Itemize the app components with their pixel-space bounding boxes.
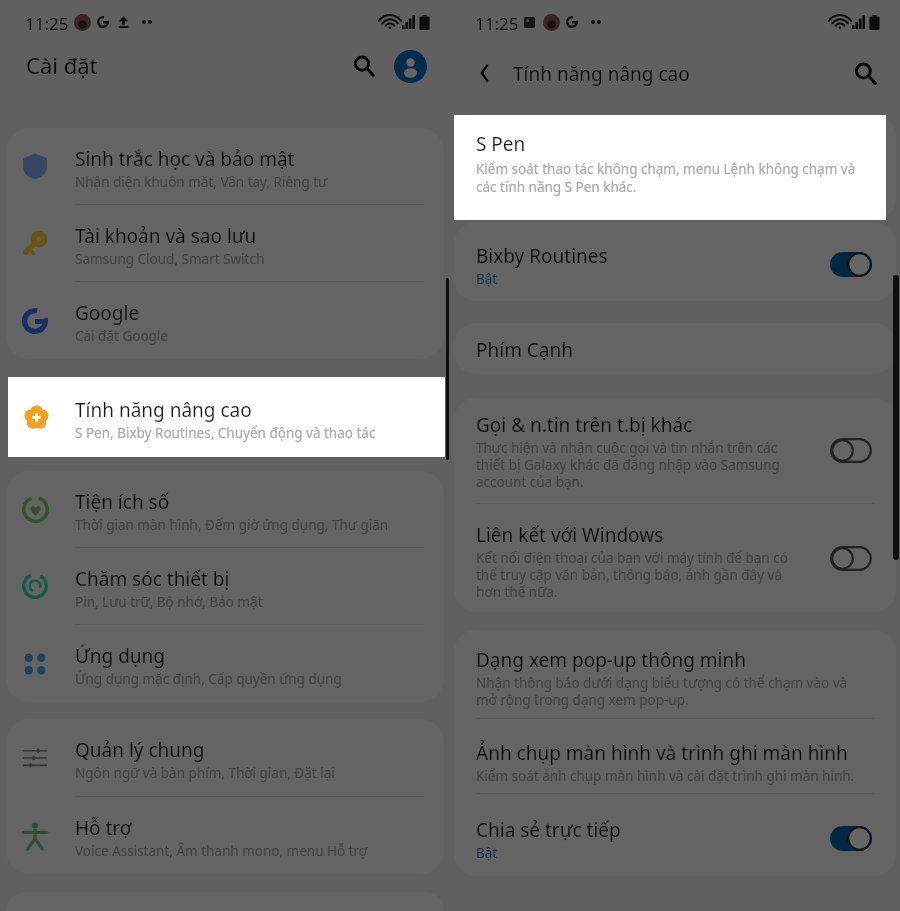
- staticText: Pin, Lưu trữ, Bộ nhớ, Bảo mật: [75, 593, 263, 611]
- staticText: Phím Cạnh: [476, 337, 573, 363]
- staticText: Sinh trắc học và bảo mật: [75, 146, 295, 172]
- staticText: Chăm sóc thiết bị: [75, 566, 230, 592]
- staticText: Ứng dụng: [75, 643, 166, 669]
- staticText: Dạng xem pop-up thông minh: [476, 647, 746, 673]
- button[interactable]: Sinh trắc học và bảo mật: [6, 128, 444, 204]
- staticText: Kết nối điện thoại của bạn với máy tính …: [476, 549, 806, 601]
- staticText: Bật: [476, 844, 498, 862]
- staticText: Bixby Routines: [476, 243, 608, 269]
- staticText: Tài khoản và sao lưu: [75, 223, 257, 249]
- button[interactable]: S Pen: [454, 115, 886, 220]
- staticText: Gọi & n.tin trên t.bị khác: [476, 412, 693, 438]
- button[interactable]: Chia sẻ trực tiếp: [476, 794, 872, 876]
- button[interactable]: Liên kết với Windows: [476, 504, 872, 612]
- button[interactable]: Chăm sóc thiết bị: [6, 548, 444, 624]
- button[interactable]: Google: [6, 282, 444, 359]
- staticText: S Pen, Bixby Routines, Chuyển động và th…: [75, 424, 376, 442]
- button[interactable]: Quản lý chung: [6, 719, 444, 796]
- staticText: Tiện ích số: [75, 489, 170, 515]
- button[interactable]: Gọi & n.tin trên t.bị khác: [476, 398, 872, 503]
- staticText: Chia sẻ trực tiếp: [476, 817, 621, 843]
- staticText: Thực hiện và nhận cuộc gọi và tin nhắn t…: [476, 439, 806, 491]
- staticText: Ứng dụng mặc định, Cấp quyền ứng dụng: [75, 670, 342, 688]
- button[interactable]: Tài khoản và sao lưu: [6, 205, 444, 281]
- staticText: Ngôn ngữ và bàn phím, Thời gian, Đặt lại: [75, 764, 335, 782]
- staticText: Thời gian màn hình, Đếm giờ ứng dụng, Th…: [75, 516, 389, 534]
- staticText: Bật: [476, 270, 498, 288]
- staticText: 11:25: [475, 12, 519, 35]
- staticText: Tính năng nâng cao: [75, 397, 252, 423]
- staticText: Voice Assistant, Âm thanh mono, menu Hỗ …: [75, 842, 368, 860]
- button[interactable]: Account: [394, 50, 427, 83]
- button[interactable]: Back: [467, 56, 501, 90]
- staticText: S Pen: [476, 131, 526, 157]
- button[interactable]: Dạng xem pop-up thông minh: [476, 630, 872, 718]
- staticText: Quản lý chung: [75, 737, 205, 763]
- button[interactable]: Tiện ích số: [6, 471, 444, 547]
- staticText: Ảnh chụp màn hình và trình ghi màn hình: [476, 740, 848, 766]
- staticText: Cài đặt: [26, 50, 98, 80]
- button[interactable]: Ảnh chụp màn hình và trình ghi màn hình: [476, 719, 872, 793]
- staticText: Tính năng nâng cao: [513, 61, 690, 87]
- button[interactable]: Bixby Routines: [476, 222, 872, 301]
- button[interactable]: Ứng dụng: [6, 625, 444, 702]
- staticText: Samsung Cloud, Smart Switch: [75, 250, 265, 268]
- staticText: Google: [75, 300, 140, 326]
- button[interactable]: Search: [846, 54, 884, 92]
- staticText: Kiểm soát ảnh chụp màn hình và cài đặt t…: [476, 767, 855, 785]
- staticText: 11:25: [25, 12, 69, 35]
- staticText: Nhận diện khuôn mặt, Vân tay, Riêng tư: [75, 173, 328, 191]
- button[interactable]: Phím Cạnh: [476, 323, 872, 374]
- button[interactable]: Hỗ trợ: [6, 797, 444, 874]
- staticText: Cài đặt Google: [75, 327, 168, 345]
- staticText: Hỗ trợ: [75, 815, 132, 841]
- button[interactable]: Search: [345, 47, 383, 85]
- staticText: Nhận thông báo dưới dạng biểu tượng có t…: [476, 674, 866, 709]
- button[interactable]: Tính năng nâng cao: [8, 377, 445, 457]
- staticText: Liên kết với Windows: [476, 522, 664, 548]
- staticText: Kiểm soát thao tác không chạm, menu Lệnh…: [476, 160, 866, 196]
